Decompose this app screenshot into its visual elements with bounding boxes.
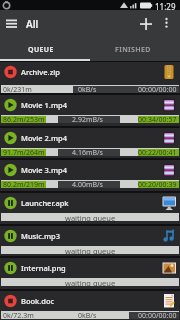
- staticText: 86.2m/253m: [3, 115, 45, 123]
- staticText: Launcher.apk: [21, 198, 69, 208]
- staticText: 0k/231m: [3, 85, 32, 93]
- button[interactable]: Archive.zip: [0, 62, 180, 95]
- staticText: 2.92mB/s: [72, 115, 103, 123]
- staticText: 00:34/00:57: [138, 115, 177, 123]
- staticText: Archive.zip: [21, 67, 60, 77]
- staticText: Internal.png: [21, 263, 66, 273]
- button[interactable]: Movie 2.mp4: [0, 128, 180, 160]
- staticText: waiting queue: [65, 278, 116, 286]
- button[interactable]: [160, 16, 174, 32]
- button[interactable]: Internal.png: [0, 258, 180, 291]
- staticText: QUEUE: [28, 45, 54, 55]
- staticText: 4.16mB/s: [72, 148, 103, 156]
- staticText: 0k/72.3m: [3, 311, 34, 319]
- staticText: 11:29: [155, 1, 176, 11]
- staticText: 80.2m/219m: [3, 180, 45, 188]
- staticText: 00:00/00:00: [138, 311, 177, 319]
- button[interactable]: Movie 3.mp4: [0, 160, 180, 193]
- staticText: 00:20/00:39: [138, 180, 177, 188]
- button[interactable]: Music.mp3: [0, 226, 180, 258]
- button[interactable]: FINISHED: [92, 38, 173, 61]
- staticText: 00:00/00:00: [138, 85, 177, 93]
- button[interactable]: Movie 1.mp4: [0, 95, 180, 128]
- staticText: Movie 3.mp4: [21, 165, 67, 175]
- staticText: 0kB/s: [78, 311, 97, 319]
- staticText: 91.7m/264m: [3, 148, 45, 156]
- staticText: Movie 1.mp4: [21, 100, 67, 110]
- button[interactable]: QUEUE: [0, 38, 81, 61]
- staticText: waiting queue: [65, 213, 116, 221]
- staticText: 00:22/00:41: [138, 148, 177, 156]
- staticText: All: [26, 17, 39, 31]
- staticText: waiting queue: [65, 246, 116, 254]
- staticText: FINISHED: [115, 45, 151, 55]
- staticText: Movie 2.mp4: [21, 133, 67, 143]
- button[interactable]: Launcher.apk: [0, 193, 180, 226]
- button[interactable]: Book.doc: [0, 291, 180, 320]
- staticText: 4.00mB/s: [72, 180, 103, 188]
- button[interactable]: [138, 16, 154, 32]
- staticText: 0kB/s: [78, 85, 97, 93]
- staticText: Music.mp3: [21, 231, 61, 241]
- button[interactable]: [3, 18, 21, 32]
- staticText: Book.doc: [21, 296, 55, 306]
